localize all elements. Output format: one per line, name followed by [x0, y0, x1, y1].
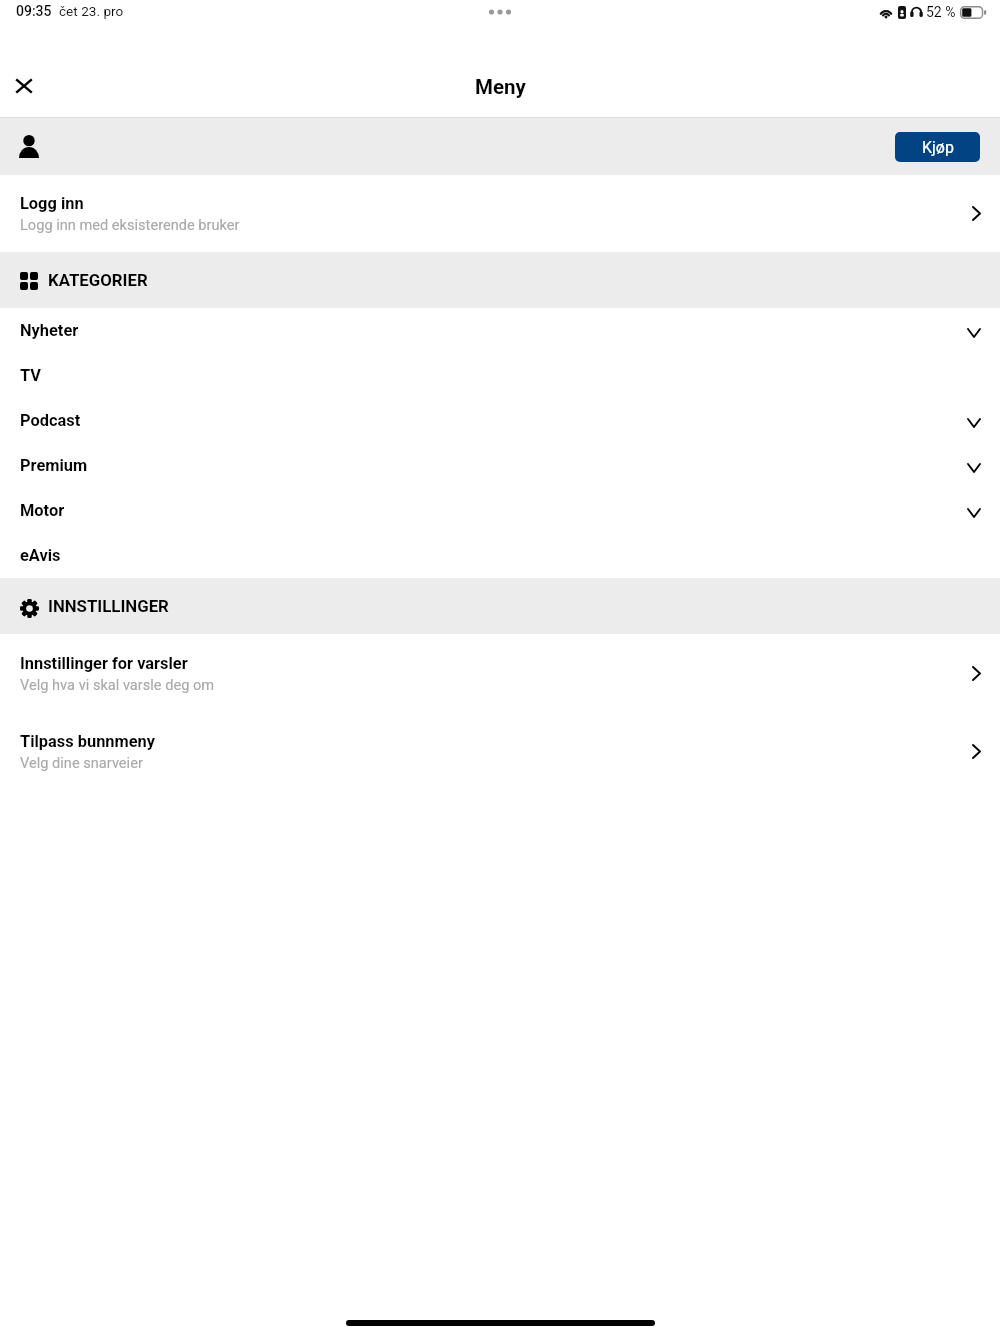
- staticText: 09:35: [16, 3, 52, 19]
- button[interactable]: TV: [0, 353, 1000, 398]
- staticText: Nyheter: [20, 321, 79, 340]
- staticText: Innstillinger for varsler: [20, 654, 188, 673]
- button[interactable]: Motor: [0, 488, 1000, 533]
- staticText: TV: [20, 366, 41, 385]
- staticText: Tilpass bunnmeny: [20, 732, 155, 751]
- staticText: INNSTILLINGER: [48, 596, 169, 616]
- button[interactable]: Account: [7, 121, 51, 173]
- staticText: Velg dine snarveier: [20, 754, 143, 771]
- staticText: Meny: [475, 75, 526, 99]
- button[interactable]: eAvis: [0, 533, 1000, 578]
- button[interactable]: Podcast: [0, 398, 1000, 443]
- button[interactable]: Innstillinger for varsler: [0, 634, 1000, 712]
- staticText: Premium: [20, 456, 88, 475]
- staticText: 52 %: [926, 4, 956, 20]
- staticText: Podcast: [20, 411, 81, 430]
- button[interactable]: Premium: [0, 443, 1000, 488]
- staticText: Logg inn: [20, 194, 84, 213]
- button[interactable]: Nyheter: [0, 308, 1000, 353]
- staticText: Kjøp: [922, 138, 954, 157]
- button[interactable]: Close: [2, 65, 46, 109]
- staticText: Logg inn med eksisterende bruker: [20, 216, 240, 233]
- button[interactable]: Kjøp: [895, 132, 980, 162]
- button[interactable]: Tilpass bunnmeny: [0, 712, 1000, 790]
- staticText: KATEGORIER: [48, 270, 148, 290]
- staticText: čet 23. pro: [59, 3, 124, 19]
- staticText: Motor: [20, 501, 65, 520]
- staticText: eAvis: [20, 546, 61, 565]
- button[interactable]: Logg inn: [0, 175, 1000, 252]
- staticText: Velg hva vi skal varsle deg om: [20, 676, 215, 693]
